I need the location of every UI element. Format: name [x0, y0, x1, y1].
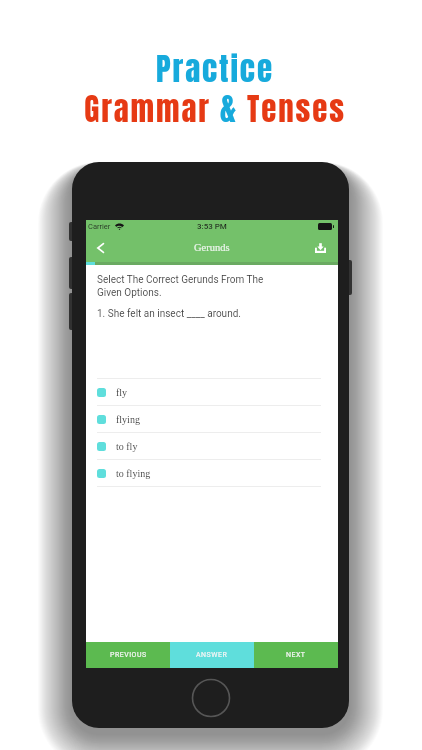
staticText: Grammar & Tenses [84, 86, 346, 133]
staticText: to flying [116, 468, 151, 479]
button[interactable]: ANSWER [170, 642, 254, 668]
button[interactable]: fly [86, 379, 338, 405]
button[interactable]: Back [91, 238, 110, 257]
staticText: Gerunds [194, 242, 230, 254]
staticText: fly [116, 387, 128, 398]
button[interactable]: flying [86, 406, 338, 432]
button[interactable]: PREVIOUS [86, 642, 170, 668]
staticText: Select The Correct Gerunds From The Give… [97, 274, 277, 298]
staticText: flying [116, 414, 140, 425]
button[interactable]: Download [311, 238, 330, 257]
staticText: ANSWER [196, 651, 228, 659]
staticText: PREVIOUS [110, 651, 147, 659]
button[interactable]: NEXT [254, 642, 338, 668]
staticText: 3:53 PM [197, 222, 227, 231]
button[interactable]: to flying [86, 460, 338, 486]
staticText: to fly [116, 441, 138, 452]
button[interactable]: to fly [86, 433, 338, 459]
staticText: 1. She felt an insect ____ around. [97, 308, 241, 320]
staticText: Practice [156, 46, 274, 93]
staticText: NEXT [286, 651, 306, 659]
staticText: Carrier [88, 222, 111, 231]
